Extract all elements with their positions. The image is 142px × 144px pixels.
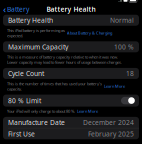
staticText: Your iPad will only charge to about 80 %… — [7, 109, 75, 114]
staticText: First Use — [8, 129, 35, 138]
staticText: ..ıl — [118, 0, 122, 3]
staticText: This iPad battery is performing as expec… — [7, 28, 65, 38]
staticText: Battery — [7, 5, 29, 14]
staticText: 18 — [126, 69, 134, 78]
staticText: Normal — [110, 16, 134, 25]
staticText: Learn More — [77, 109, 98, 114]
button[interactable]: ‹ — [0, 4, 32, 14]
staticText: December 2024 — [83, 118, 134, 127]
staticText: Maximum Capacity — [8, 42, 68, 51]
staticText: This is the number of times that has use… — [7, 81, 102, 92]
staticText: 100 % — [114, 42, 134, 51]
button[interactable]: First Use — [3, 128, 139, 139]
button[interactable]: Manufacture Date — [3, 117, 139, 128]
button[interactable]: 80 % Limit — [3, 95, 139, 107]
button[interactable]: Maximum Capacity — [3, 41, 139, 52]
staticText: Learn More — [104, 84, 125, 89]
staticText: Battery Health — [46, 5, 95, 14]
button[interactable]: Battery Health — [3, 15, 139, 26]
staticText: ‹ — [3, 3, 6, 15]
staticText: This is a measure of battery capacity re… — [7, 54, 122, 65]
staticText: Cycle Count — [8, 69, 44, 78]
staticText: Battery Health — [8, 16, 53, 25]
button[interactable]: Cycle Count — [3, 68, 139, 79]
staticText: About Battery & Charging — [67, 30, 112, 36]
staticText: 80 % Limit — [8, 96, 41, 105]
staticText: Manufacture Date — [8, 118, 65, 127]
staticText: February 2025 — [88, 129, 134, 138]
